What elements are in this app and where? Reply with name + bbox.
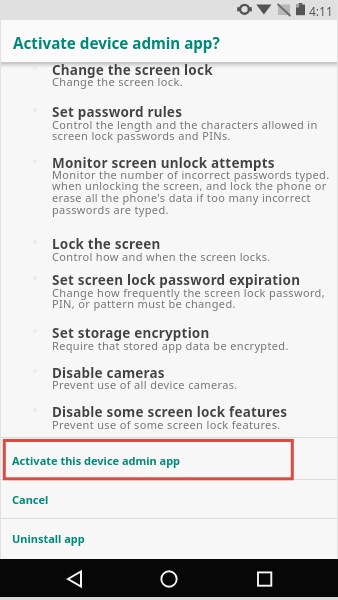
staticText: Uninstall app [12, 531, 85, 546]
staticText: Activate this device admin app [12, 453, 181, 468]
staticText: Prevent use of all device cameras. [52, 377, 238, 392]
button[interactable]: Activate this device admin app [0, 438, 338, 479]
staticText: Activate device admin app? [13, 33, 220, 54]
button[interactable]: Uninstall app [0, 519, 338, 559]
staticText: Control how and when the screen locks. [52, 249, 271, 264]
staticText: Control the length and the characters al… [52, 117, 318, 144]
staticText: Monitor the number of incorrect password… [52, 167, 330, 218]
staticText: Disable some screen lock features [52, 403, 288, 421]
button[interactable] [225, 559, 338, 597]
staticText: 4:11 [309, 3, 333, 19]
staticText: Change the screen lock [52, 61, 213, 79]
staticText: Monitor screen unlock attempts [52, 154, 275, 172]
staticText: Lock the screen [52, 235, 161, 253]
staticText: Change how frequently the screen lock pa… [52, 285, 325, 312]
staticText: Prevent use of some screen lock features… [52, 417, 281, 432]
staticText: Set password rules [52, 103, 183, 121]
staticText: Require that stored app data be encrypte… [52, 338, 289, 353]
staticText: Set storage encryption [52, 324, 210, 342]
staticText: Set screen lock password expiration [52, 271, 301, 289]
staticText: Change the screen lock. [52, 74, 183, 89]
button[interactable] [0, 559, 112, 597]
staticText: Cancel [12, 492, 49, 507]
button[interactable] [112, 559, 225, 597]
button[interactable]: Cancel [0, 482, 338, 518]
staticText: Disable cameras [52, 364, 165, 382]
